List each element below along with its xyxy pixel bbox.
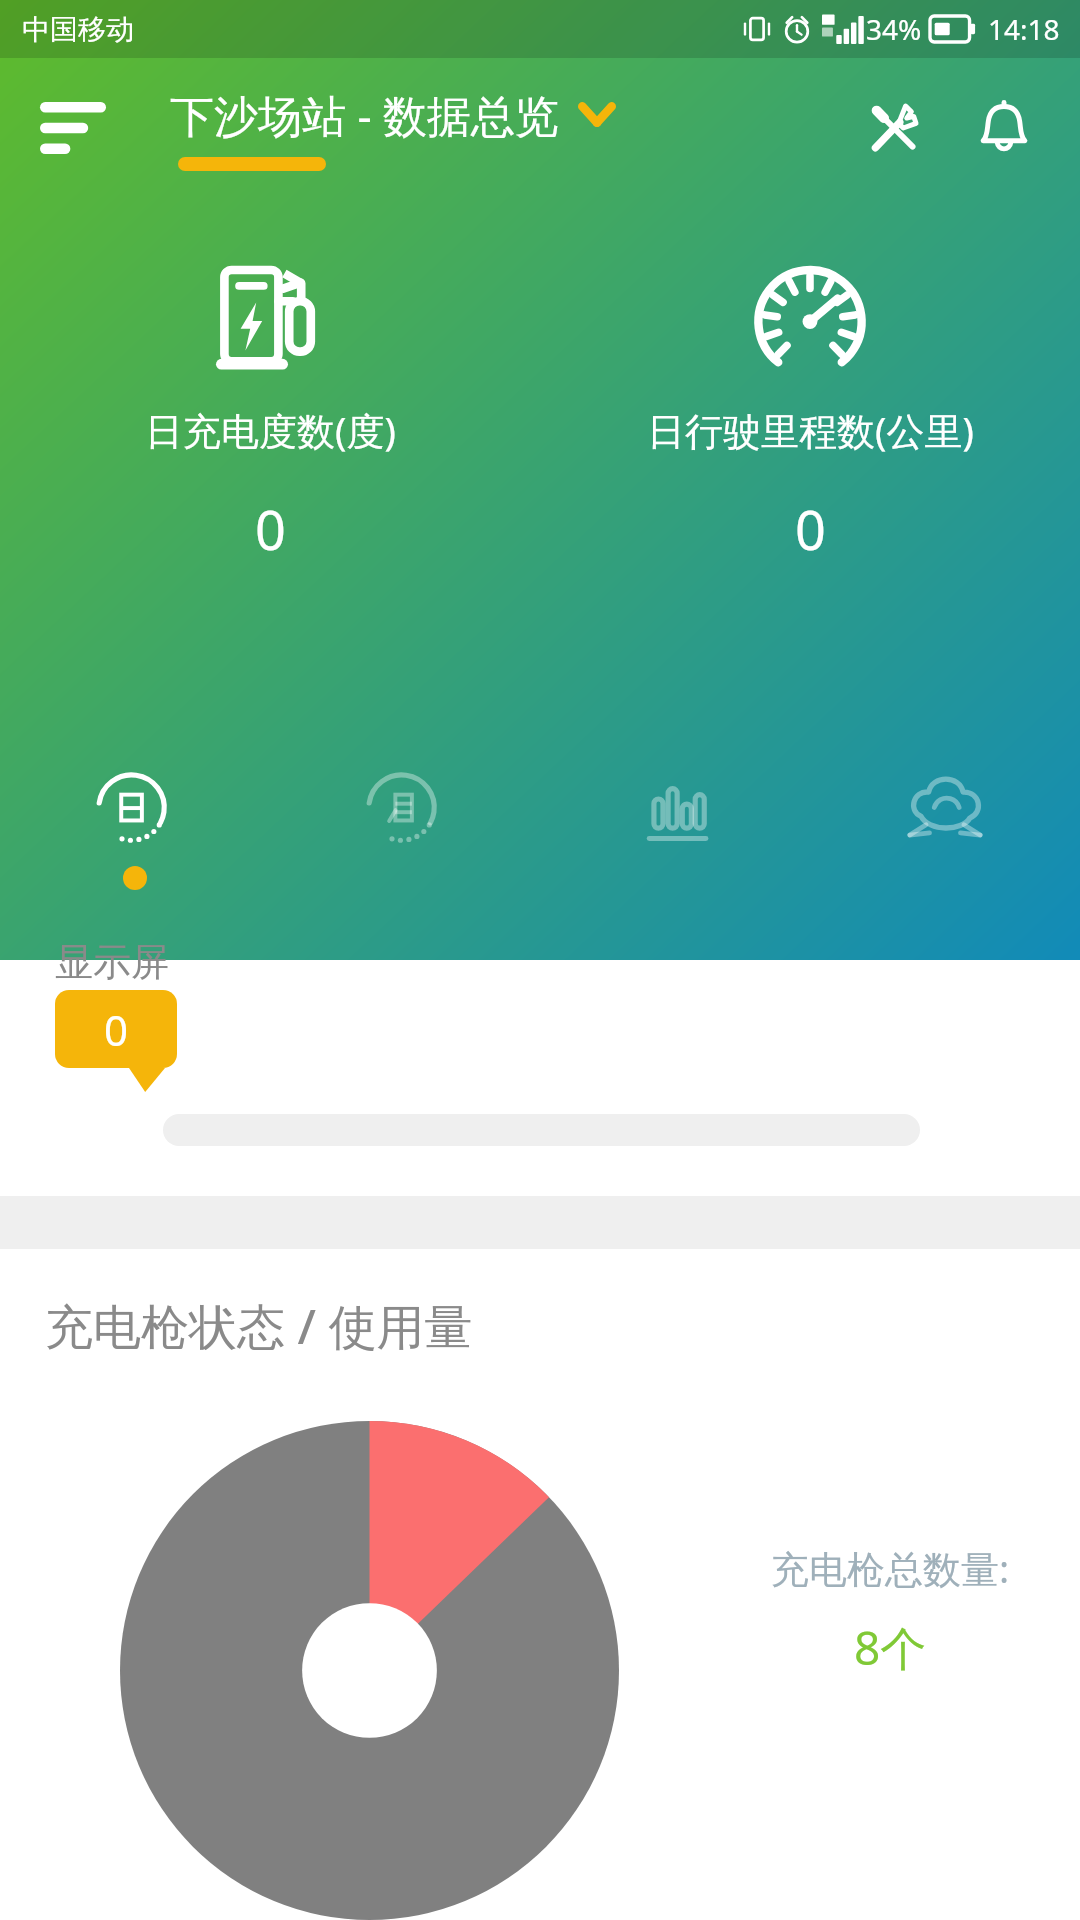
button[interactable]: 日报表 (0, 768, 270, 890)
staticText: 充电枪总数量: (771, 1542, 1010, 1594)
button[interactable]: 下沙场站 - 数据总览 (170, 85, 616, 171)
button[interactable]: 月报表 (270, 768, 540, 890)
staticText: 14:18 (988, 10, 1060, 48)
button[interactable]: 消息 (810, 768, 1080, 890)
staticText: 显示屏 (55, 938, 169, 986)
staticText: 34% (866, 10, 922, 48)
staticText: 0 (104, 1001, 129, 1058)
staticText: 日行驶里程数(公里) (647, 404, 974, 456)
button[interactable]: 日充电度数(度) (0, 258, 540, 566)
button[interactable]: Tools (844, 78, 944, 178)
staticText: 0 (795, 492, 826, 566)
button[interactable]: Menu (18, 73, 128, 183)
button[interactable]: 柱状图 (540, 768, 810, 890)
staticText: 8个 (854, 1616, 927, 1679)
staticText: 充电枪状态 / 使用量 (45, 1293, 473, 1359)
staticText: 日充电度数(度) (145, 404, 396, 456)
staticText: 0 (255, 492, 286, 566)
button[interactable]: 日行驶里程数(公里) (540, 258, 1080, 566)
staticText: 下沙场站 - 数据总览 (170, 85, 560, 145)
staticText: 中国移动 (22, 12, 134, 47)
button[interactable]: Notifications (954, 78, 1054, 178)
